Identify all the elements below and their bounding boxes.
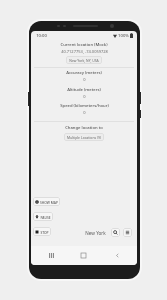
- staticText: Speed (kilometers/hour): [60, 103, 109, 109]
- button[interactable]: Multiple Locations (9): [64, 133, 104, 141]
- staticText: Current location (Mock): [60, 42, 108, 48]
- button[interactable]: Recent apps: [45, 246, 57, 265]
- button[interactable]: STOP: [33, 227, 51, 236]
- staticText: PAUSE: [40, 215, 51, 219]
- staticText: Accuracy (meters): [66, 70, 102, 76]
- button[interactable]: Home: [77, 246, 89, 265]
- staticText: Multiple Locations (9): [67, 135, 101, 140]
- staticText: New York, NY, USA: [69, 58, 99, 63]
- button[interactable]: Back: [111, 246, 123, 265]
- staticText: STOP: [40, 230, 49, 234]
- button[interactable]: New York, NY, USA: [66, 56, 102, 64]
- button[interactable]: Search: [111, 228, 120, 237]
- staticText: SHOW MAP: [40, 200, 58, 204]
- staticText: New York: [85, 230, 106, 236]
- staticText: 0: [83, 94, 86, 99]
- staticText: 0: [83, 110, 86, 115]
- button[interactable]: SHOW MAP: [33, 197, 60, 206]
- staticText: 0: [83, 77, 86, 82]
- staticText: Altitude (meters): [67, 87, 101, 93]
- staticText: 10:00: [36, 33, 47, 39]
- button[interactable]: List: [123, 228, 132, 237]
- button[interactable]: PAUSE: [33, 212, 53, 221]
- staticText: 40.7127753, -74.0059728: [61, 49, 108, 54]
- staticText: 100%: [118, 33, 129, 39]
- staticText: Change location to: [65, 125, 103, 131]
